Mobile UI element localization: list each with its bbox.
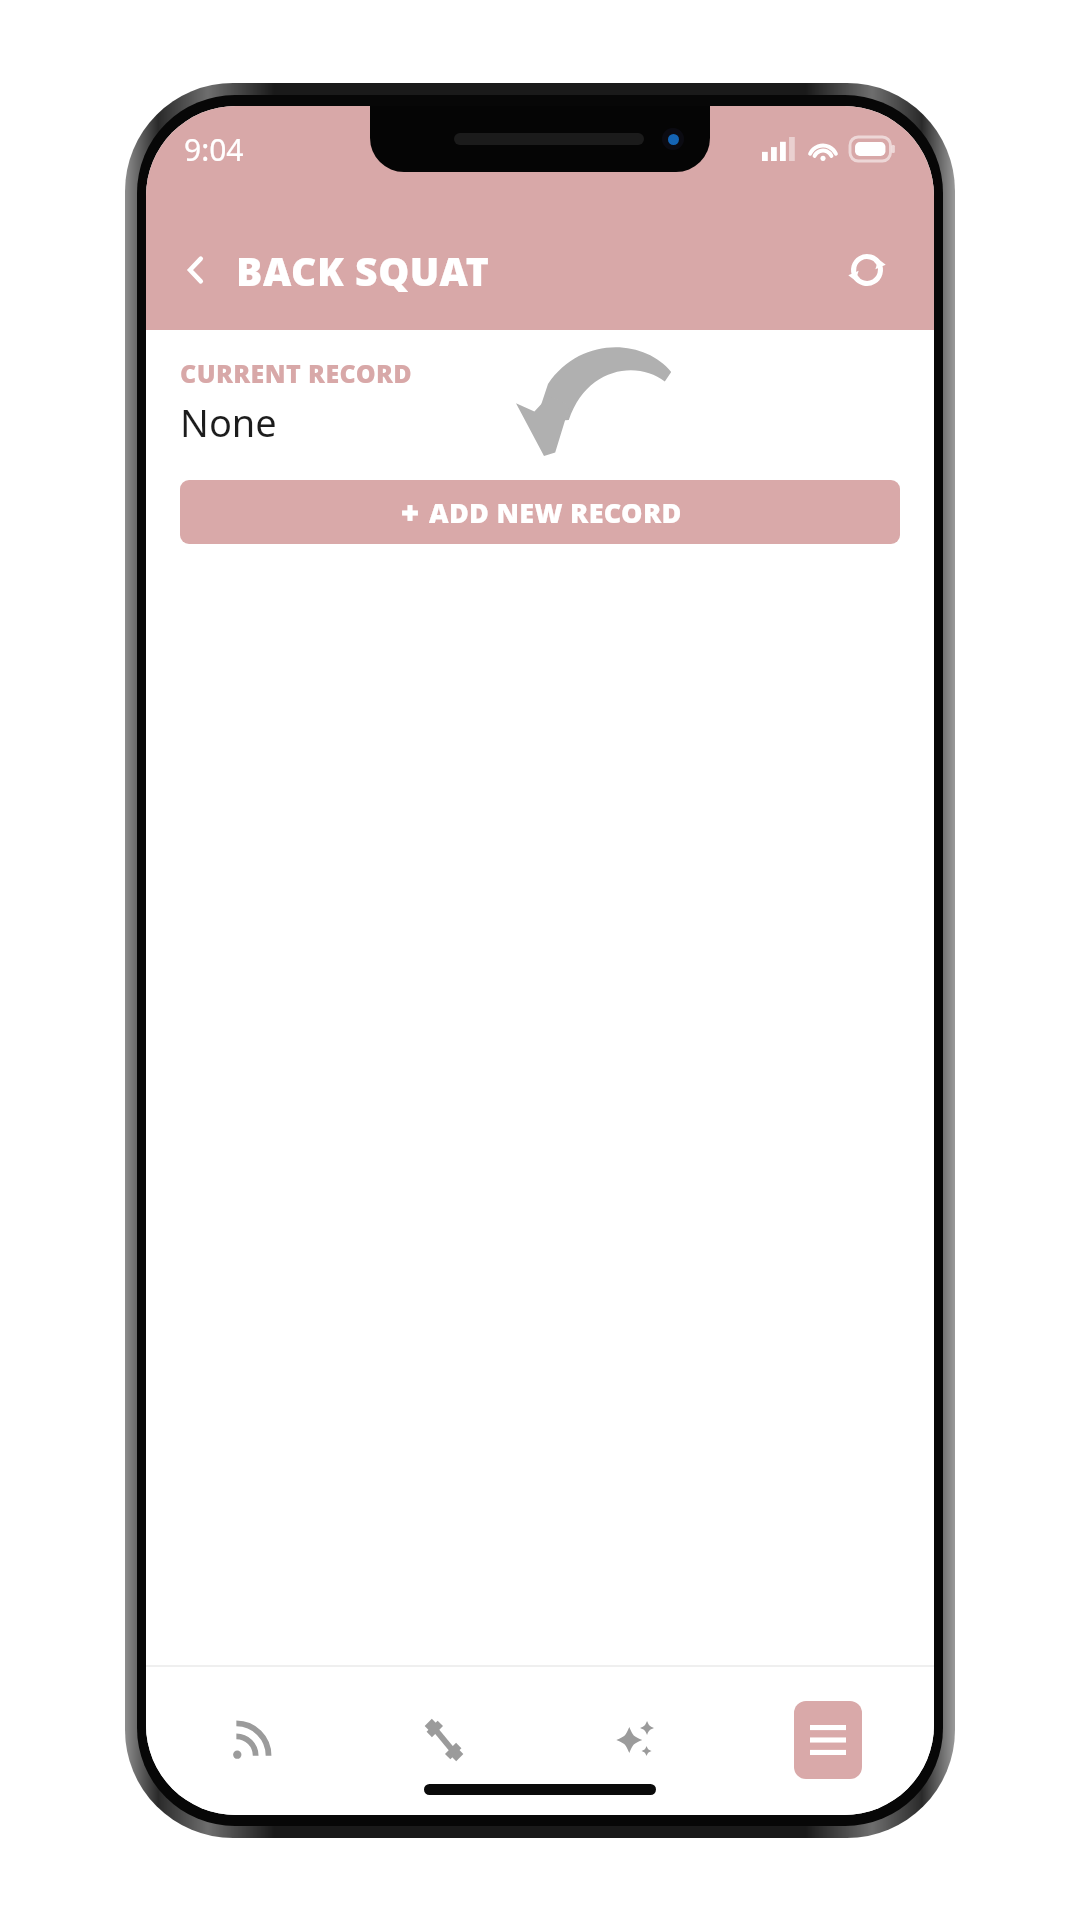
- staticText: ADD NEW RECORD: [429, 494, 682, 531]
- button[interactable]: Feed: [156, 1665, 348, 1815]
- button[interactable]: ADD NEW RECORD: [180, 480, 900, 544]
- staticText: CURRENT RECORD: [180, 356, 413, 390]
- staticText: BACK SQUAT: [236, 244, 490, 297]
- staticText: 9:04: [184, 129, 244, 170]
- button[interactable]: Back: [164, 238, 228, 302]
- staticText: None: [180, 396, 277, 448]
- button[interactable]: Workouts: [348, 1665, 540, 1815]
- button[interactable]: Menu: [732, 1665, 924, 1815]
- button[interactable]: Refresh: [830, 233, 904, 307]
- button[interactable]: Highlights: [540, 1665, 732, 1815]
